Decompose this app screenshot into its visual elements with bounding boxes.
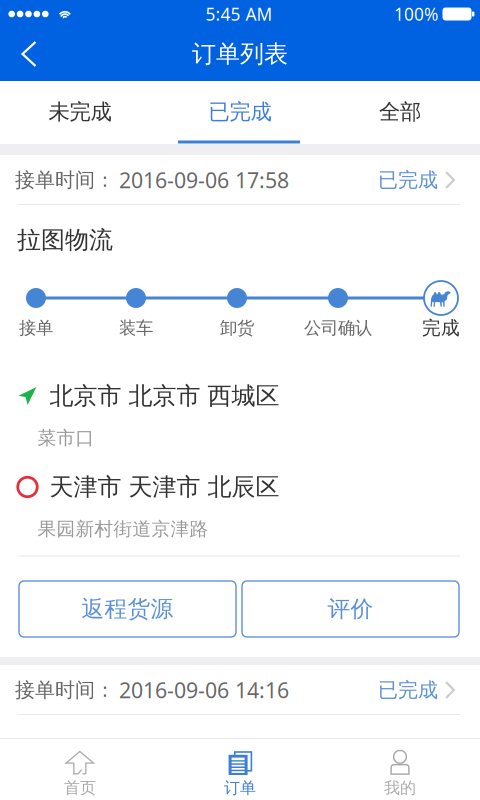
staticText: 完成 <box>422 316 460 339</box>
button[interactable]: 首页 <box>0 738 160 800</box>
staticText: 5:45 AM <box>205 2 272 25</box>
button[interactable]: 全部 <box>320 80 480 143</box>
button[interactable]: 我的 <box>320 738 480 800</box>
staticText: 未完成 <box>48 99 111 125</box>
staticText: 菜市口 <box>37 426 94 449</box>
staticText: 订单列表 <box>192 39 288 69</box>
staticText: 2016-09-06 14:16 <box>119 676 289 704</box>
staticText: 订单 <box>224 778 256 798</box>
staticText: 接单 <box>19 317 53 339</box>
staticText: 100% <box>394 2 438 25</box>
staticText: 2016-09-06 17:58 <box>119 166 289 194</box>
staticText: 果园新村街道京津路 <box>37 517 208 540</box>
staticText: 已完成 <box>378 168 438 192</box>
staticText: 卸货 <box>220 317 254 339</box>
staticText: 已完成 <box>208 99 271 125</box>
staticText: 全部 <box>379 99 421 125</box>
button[interactable]: Back <box>6 27 52 80</box>
button[interactable]: 订单 <box>160 738 320 800</box>
staticText: 拉图物流 <box>17 225 113 255</box>
staticText: 天津市 天津市 北辰区 <box>49 472 279 502</box>
staticText: 首页 <box>64 778 96 798</box>
button[interactable]: 接单时间： <box>0 155 480 205</box>
staticText: 北京市 北京市 西城区 <box>49 381 279 411</box>
staticText: 装车 <box>119 317 153 339</box>
staticText: 已完成 <box>378 678 438 702</box>
button[interactable]: 返程货源 <box>19 581 236 637</box>
staticText: 接单时间： <box>15 168 115 192</box>
staticText: 评价 <box>327 595 373 623</box>
button[interactable]: 接单时间： <box>0 665 480 715</box>
staticText: 我的 <box>384 778 416 798</box>
staticText: 返程货源 <box>81 595 173 623</box>
staticText: 接单时间： <box>15 678 115 702</box>
button[interactable]: 未完成 <box>0 80 160 143</box>
button[interactable]: 评价 <box>242 581 459 637</box>
staticText: 公司确认 <box>304 317 372 339</box>
button[interactable]: 已完成 <box>160 80 320 143</box>
